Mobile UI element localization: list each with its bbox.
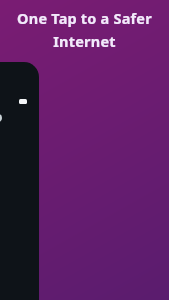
staticText: Internet [53,31,116,51]
button[interactable] [0,114,2,122]
staticText: One Tap to a Safer [17,8,152,28]
button[interactable]: App preview [0,62,39,300]
